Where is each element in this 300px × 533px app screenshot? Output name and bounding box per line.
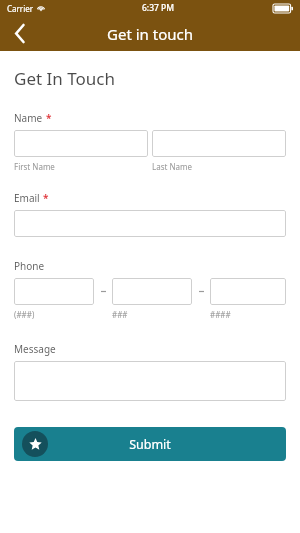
button[interactable]	[14, 278, 94, 305]
staticText: Name	[14, 111, 43, 125]
staticText: Carrier	[7, 3, 34, 14]
staticText: Message	[14, 342, 56, 356]
button[interactable]: Submit	[14, 427, 286, 461]
button[interactable]	[152, 130, 286, 157]
staticText: Get in touch	[107, 24, 193, 44]
staticText: 6:37 PM	[142, 2, 175, 14]
staticText: *	[46, 111, 52, 125]
staticText: (###)	[14, 309, 94, 320]
button[interactable]	[14, 361, 286, 401]
staticText: Get In Touch	[14, 67, 115, 90]
staticText: Submit	[129, 436, 171, 453]
staticText: Phone	[14, 259, 45, 273]
button[interactable]	[14, 210, 286, 237]
button[interactable]: Back	[0, 16, 40, 51]
button[interactable]	[210, 278, 286, 305]
staticText: ####	[210, 309, 286, 320]
staticText: ###	[112, 309, 192, 320]
staticText: *	[43, 191, 49, 205]
staticText: Email	[14, 191, 40, 205]
staticText: First Name	[14, 161, 148, 172]
staticText: Last Name	[152, 161, 286, 172]
button[interactable]	[112, 278, 192, 305]
button[interactable]	[14, 130, 148, 157]
